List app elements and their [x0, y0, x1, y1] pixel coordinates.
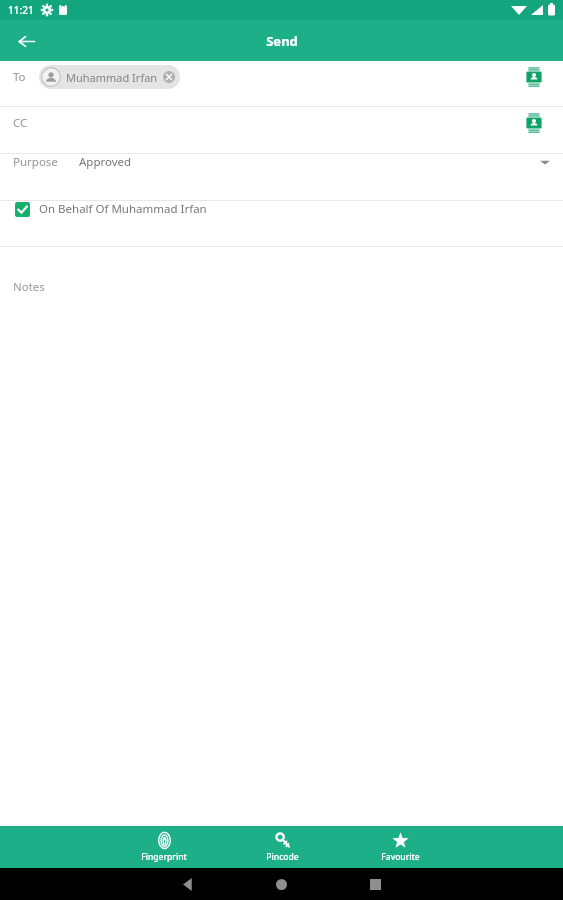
button[interactable]: Purpose	[0, 154, 563, 200]
staticText: Pincode	[266, 851, 299, 863]
button[interactable]: On Behalf Of Muhammad Irfan	[0, 201, 563, 246]
staticText: Notes	[13, 279, 45, 295]
button[interactable]: Muhammad Irfan	[39, 65, 180, 89]
staticText: On Behalf Of Muhammad Irfan	[39, 201, 207, 217]
button[interactable]: Back	[8, 23, 44, 59]
staticText: CC	[13, 115, 28, 131]
button[interactable]: Pincode	[244, 829, 320, 866]
staticText: Favourite	[381, 851, 420, 863]
button[interactable]: Fingerprint	[126, 829, 202, 866]
staticText: Fingerprint	[141, 851, 187, 863]
staticText: Purpose	[13, 154, 58, 170]
staticText: Approved	[79, 154, 132, 170]
button[interactable]: To	[0, 61, 563, 106]
staticText: To	[13, 69, 26, 85]
button[interactable]: Pick contact	[518, 107, 550, 139]
staticText: Send	[266, 32, 298, 50]
button[interactable]: Pick contact	[518, 61, 550, 93]
button[interactable]: Favourite	[362, 829, 438, 866]
staticText: Muhammad Irfan	[66, 70, 158, 85]
staticText: 11:21	[8, 3, 34, 17]
button[interactable]: CC	[0, 107, 563, 153]
button[interactable]: Notes	[0, 247, 563, 325]
